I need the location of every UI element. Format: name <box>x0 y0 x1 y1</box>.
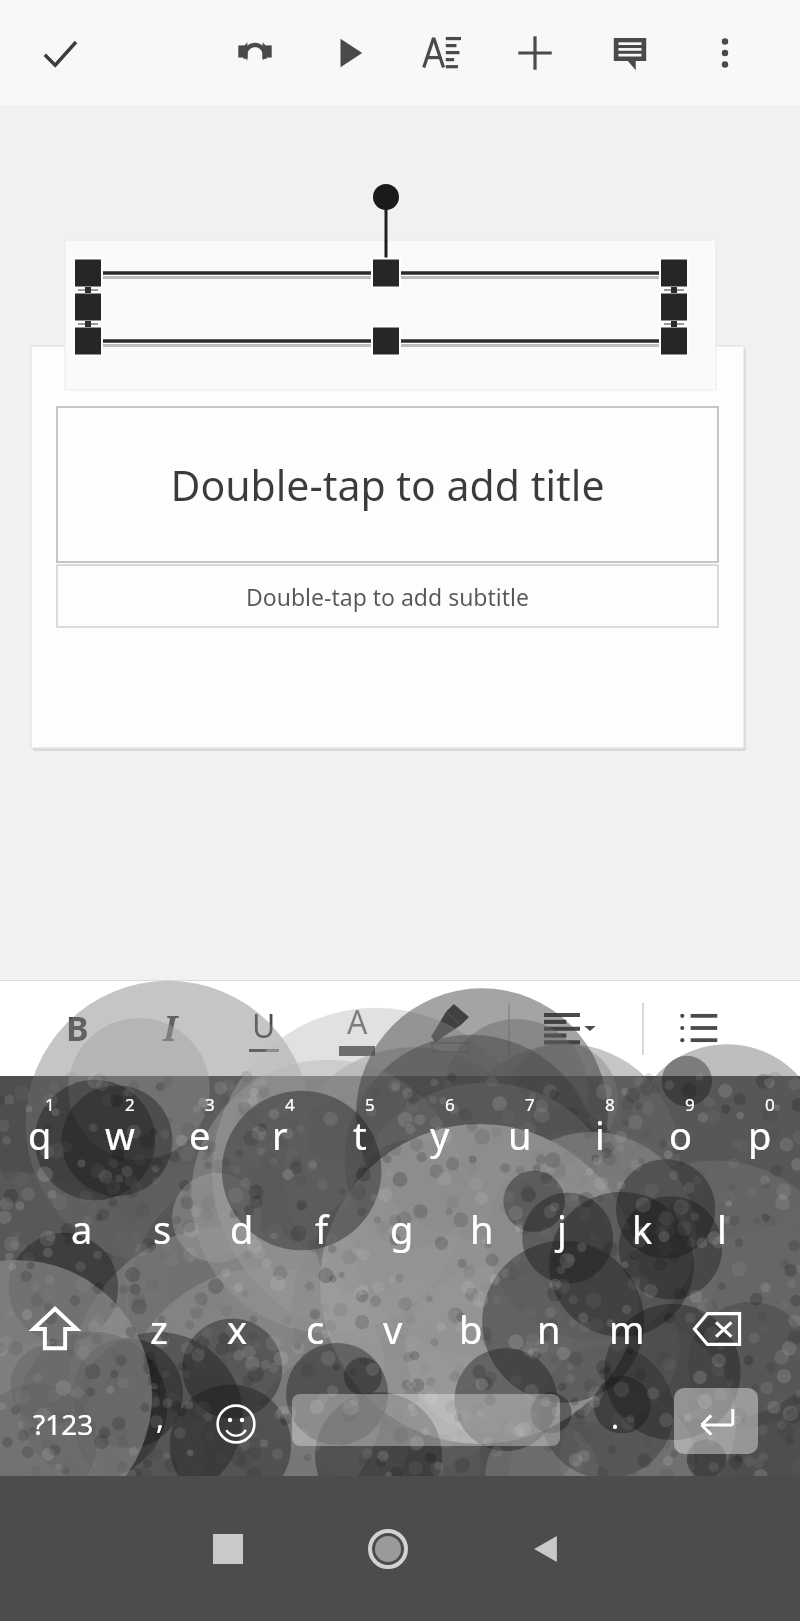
button[interactable]: Comments <box>595 18 665 88</box>
staticText: 4 <box>285 1093 295 1116</box>
button[interactable]: s <box>122 1181 202 1276</box>
button[interactable]: Text color <box>320 991 394 1065</box>
staticText: i <box>595 1109 605 1161</box>
button[interactable]: 6 <box>400 1081 480 1176</box>
staticText: o <box>669 1109 692 1161</box>
staticText: 6 <box>445 1093 455 1116</box>
staticText: p <box>748 1109 772 1161</box>
staticText: f <box>315 1203 329 1255</box>
staticText: ?123 <box>33 1405 94 1443</box>
button[interactable]: m <box>588 1281 666 1376</box>
button[interactable]: z <box>120 1281 198 1376</box>
staticText: e <box>189 1109 211 1161</box>
button[interactable]: 5 <box>320 1081 400 1176</box>
button[interactable]: 4 <box>240 1081 320 1176</box>
button[interactable]: 2 <box>80 1081 160 1176</box>
staticText: z <box>150 1303 168 1355</box>
staticText: 1 <box>45 1093 55 1116</box>
button[interactable]: Highlight <box>413 991 487 1065</box>
staticText: j <box>557 1203 567 1255</box>
button[interactable]: Double-tap to add subtitle <box>57 565 718 627</box>
button[interactable]: Home <box>350 1511 426 1587</box>
staticText: 5 <box>365 1093 375 1116</box>
staticText: t <box>353 1109 367 1161</box>
staticText: 2 <box>125 1093 135 1116</box>
staticText: a <box>71 1203 93 1255</box>
button[interactable]: Underline <box>227 991 301 1065</box>
button[interactable]: 8 <box>560 1081 640 1176</box>
button[interactable]: k <box>602 1181 682 1276</box>
button[interactable]: a <box>42 1181 122 1276</box>
button[interactable]: List <box>662 991 736 1065</box>
button[interactable]: Format <box>407 18 477 88</box>
button[interactable]: d <box>202 1181 282 1276</box>
button[interactable]: 0 <box>720 1081 800 1176</box>
staticText: l <box>717 1203 727 1255</box>
button[interactable]: Done <box>24 18 96 90</box>
button[interactable]: Italic <box>133 991 207 1065</box>
staticText: y <box>430 1109 450 1161</box>
button[interactable]: More options <box>690 18 760 88</box>
staticText: I <box>163 1005 177 1051</box>
staticText: v <box>383 1303 403 1355</box>
staticText: , <box>156 1397 165 1438</box>
button[interactable]: Present <box>315 18 385 88</box>
button[interactable]: l <box>682 1181 762 1276</box>
button[interactable]: Alignment <box>533 991 607 1065</box>
button[interactable]: , <box>125 1376 195 1471</box>
button[interactable]: Undo <box>220 18 290 88</box>
button[interactable]: Bold <box>40 991 114 1065</box>
staticText: 8 <box>605 1093 615 1116</box>
staticText: g <box>390 1203 414 1255</box>
button[interactable]: v <box>354 1281 432 1376</box>
staticText: b <box>459 1303 483 1355</box>
staticText: c <box>306 1303 325 1355</box>
button[interactable]: 3 <box>160 1081 240 1176</box>
staticText: B <box>66 1005 89 1051</box>
staticText: k <box>632 1203 653 1255</box>
button[interactable]: . <box>580 1376 650 1471</box>
button[interactable]: Shift <box>10 1281 100 1376</box>
button[interactable]: Insert <box>500 18 570 88</box>
staticText: Double-tap to add title <box>170 457 605 513</box>
button[interactable]: 9 <box>640 1081 720 1176</box>
button[interactable]: Emoji <box>200 1376 272 1471</box>
staticText: 0 <box>765 1093 775 1116</box>
staticText: m <box>609 1303 645 1355</box>
button[interactable]: n <box>510 1281 588 1376</box>
staticText: x <box>227 1303 248 1355</box>
button[interactable]: h <box>442 1181 522 1276</box>
staticText: A <box>347 1000 368 1044</box>
button[interactable]: Backspace <box>672 1281 762 1376</box>
button[interactable]: b <box>432 1281 510 1376</box>
button[interactable]: 1 <box>0 1081 80 1176</box>
button[interactable]: Recents <box>190 1511 266 1587</box>
staticText: 9 <box>685 1093 695 1116</box>
staticText: 3 <box>205 1093 215 1116</box>
staticText: q <box>28 1109 52 1161</box>
button[interactable]: Enter <box>674 1388 758 1454</box>
staticText: s <box>153 1203 172 1255</box>
button[interactable]: Back <box>508 1511 584 1587</box>
staticText: . <box>611 1397 620 1438</box>
button[interactable]: 7 <box>480 1081 560 1176</box>
staticText: n <box>537 1303 561 1355</box>
button[interactable]: Double-tap to add title <box>57 407 718 562</box>
button[interactable]: j <box>522 1181 602 1276</box>
staticText: h <box>470 1203 494 1255</box>
button[interactable]: ?123 <box>8 1376 118 1471</box>
staticText: d <box>230 1203 254 1255</box>
staticText: U <box>252 1004 276 1048</box>
staticText: Double-tap to add subtitle <box>246 581 529 612</box>
button[interactable]: g <box>362 1181 442 1276</box>
staticText: 7 <box>525 1093 535 1116</box>
staticText: u <box>508 1109 532 1161</box>
button[interactable]: Space <box>292 1394 560 1446</box>
staticText: w <box>105 1109 135 1161</box>
button[interactable]: f <box>282 1181 362 1276</box>
button[interactable]: x <box>198 1281 276 1376</box>
staticText: r <box>272 1109 288 1161</box>
button[interactable]: c <box>276 1281 354 1376</box>
